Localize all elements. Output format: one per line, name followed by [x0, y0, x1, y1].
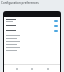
button[interactable]: [4, 18, 60, 23]
button[interactable]: Nav item: [45, 66, 51, 72]
button[interactable]: Nav item: [29, 66, 35, 72]
button[interactable]: Nav item: [14, 66, 20, 72]
staticText: Configuration preferences: [1, 1, 39, 5]
button[interactable]: [4, 23, 60, 28]
button[interactable]: [4, 28, 60, 33]
